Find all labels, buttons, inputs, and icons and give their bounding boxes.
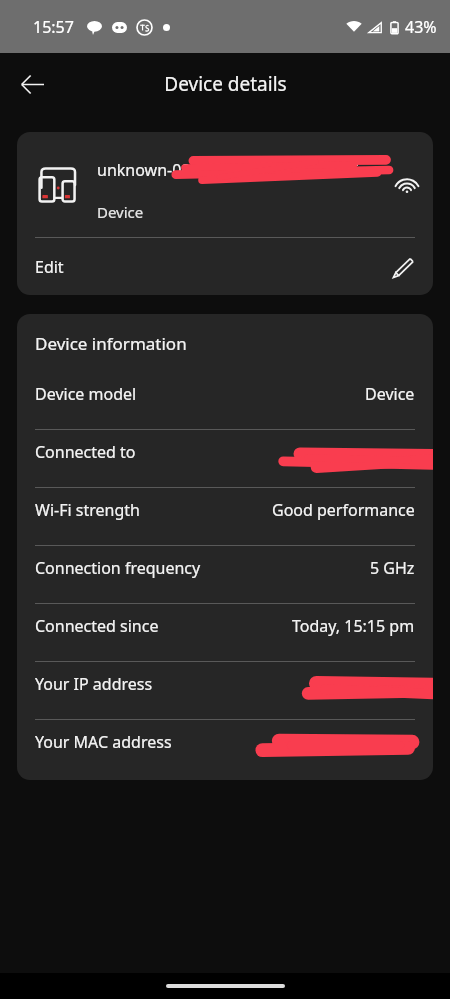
button[interactable]: Wi-Fi strength [17, 488, 433, 546]
staticText: 5 GHz [370, 557, 415, 579]
staticText: Device details [164, 71, 287, 97]
staticText: 15:57 [33, 16, 74, 38]
button[interactable]: Device model [17, 372, 433, 430]
button[interactable]: Connection frequency [17, 546, 433, 604]
staticText: Device model [35, 383, 365, 405]
staticText: Device [365, 383, 415, 405]
button[interactable]: Connected since [17, 604, 433, 662]
staticText: Connected to [35, 441, 415, 463]
staticText: Your IP address [35, 673, 415, 695]
button[interactable]: Your IP address [17, 662, 433, 720]
button[interactable]: Connected to [17, 430, 433, 488]
button[interactable]: Your MAC address [17, 720, 433, 778]
staticText: Device [97, 202, 144, 222]
staticText: Connected since [35, 615, 292, 637]
staticText: Your MAC address [35, 731, 415, 753]
staticText: Connection frequency [35, 557, 370, 579]
staticText: 43% [405, 16, 437, 38]
staticText: Good performance [272, 499, 415, 521]
staticText: Device information [35, 332, 187, 355]
button[interactable]: unknown-0000000000000000...Main [17, 132, 433, 237]
button[interactable]: Back [8, 60, 56, 108]
button[interactable]: Edit [17, 238, 433, 295]
staticText: unknown-0000000000000000...Main [97, 159, 369, 181]
staticText: Edit [35, 256, 391, 278]
other: Wi-Fi connected [395, 173, 419, 197]
staticText: Wi-Fi strength [35, 499, 272, 521]
staticText: Today, 15:15 pm [292, 615, 415, 637]
